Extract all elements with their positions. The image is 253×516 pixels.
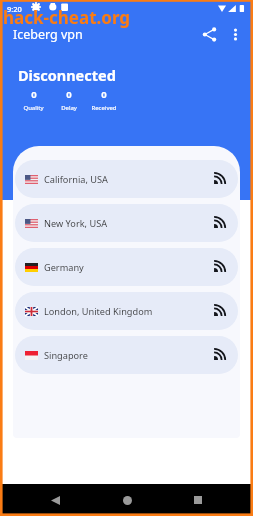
staticText: Singapore <box>44 349 88 362</box>
staticText: 0 <box>101 88 107 101</box>
button[interactable]: Home <box>110 484 144 516</box>
staticText: 0 <box>66 88 72 101</box>
staticText: Germany <box>44 261 84 274</box>
staticText: London, United Kingdom <box>44 305 153 318</box>
button[interactable]: London, United Kingdom <box>15 292 238 330</box>
button[interactable]: Share <box>195 20 223 48</box>
staticText: Disconnected <box>18 65 116 85</box>
staticText: 0 <box>31 88 37 101</box>
staticText: Quality <box>23 104 44 112</box>
button[interactable]: Recents <box>181 484 215 516</box>
staticText: 9:20 <box>7 4 22 14</box>
button[interactable]: Back <box>38 484 72 516</box>
button[interactable]: More options <box>223 22 247 46</box>
button[interactable]: Singapore <box>15 336 238 374</box>
staticText: Delay <box>61 104 77 112</box>
staticText: hack-cheat.org <box>3 6 131 29</box>
staticText: New York, USA <box>44 217 108 230</box>
staticText: Received <box>91 104 117 112</box>
button[interactable]: California, USA <box>15 160 238 198</box>
staticText: Iceberg vpn <box>13 26 83 43</box>
staticText: California, USA <box>44 173 108 186</box>
button[interactable]: New York, USA <box>15 204 238 242</box>
button[interactable]: Germany <box>15 248 238 286</box>
